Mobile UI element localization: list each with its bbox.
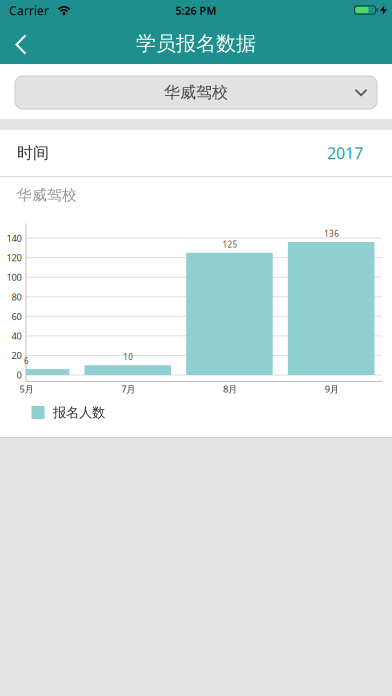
- staticText: 100: [6, 271, 21, 283]
- staticText: 6: [24, 355, 29, 366]
- staticText: 7月: [121, 383, 135, 395]
- staticText: 40: [11, 330, 21, 342]
- staticText: 20: [11, 349, 21, 362]
- staticText: 140: [6, 232, 21, 244]
- staticText: 华威驾校: [17, 186, 77, 204]
- staticText: 80: [11, 291, 21, 303]
- staticText: 120: [6, 251, 21, 264]
- staticText: 时间: [17, 143, 49, 163]
- staticText: 华威驾校: [164, 83, 228, 102]
- staticText: 10: [123, 352, 133, 362]
- button[interactable]: 华威驾校: [15, 76, 377, 109]
- staticText: 9月: [325, 383, 339, 395]
- button[interactable]: 时间: [0, 130, 392, 176]
- staticText: 学员报名数据: [136, 31, 256, 56]
- staticText: 2017: [327, 142, 363, 164]
- staticText: 5月: [19, 383, 33, 395]
- staticText: 8月: [223, 383, 237, 395]
- staticText: 136: [324, 228, 339, 239]
- staticText: 报名人数: [53, 404, 105, 421]
- staticText: 125: [222, 239, 237, 250]
- staticText: 60: [11, 310, 21, 322]
- staticText: Carrier: [9, 2, 49, 18]
- staticText: 5:26 PM: [175, 3, 216, 18]
- staticText: 0: [16, 369, 21, 381]
- button[interactable]: Back: [4, 22, 38, 66]
